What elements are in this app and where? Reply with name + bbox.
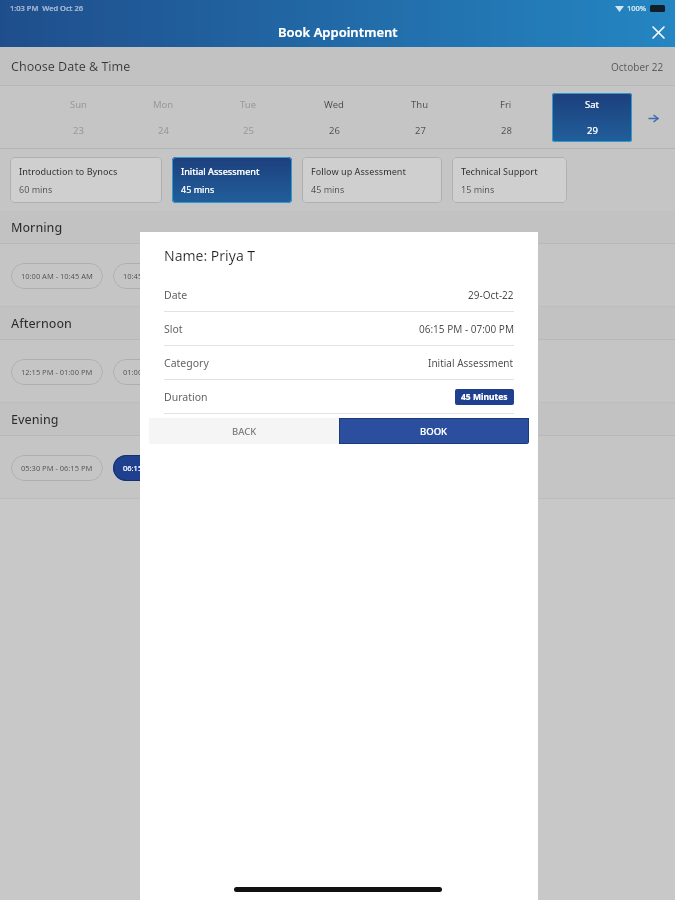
button[interactable]: Sun: [39, 93, 118, 142]
button[interactable]: Tue: [209, 93, 288, 142]
staticText: 26: [329, 124, 340, 137]
staticText: Fri: [500, 98, 512, 111]
staticText: BOOK: [420, 425, 448, 438]
staticText: Mon: [153, 98, 174, 111]
staticText: 10:00 AM - 10:45 AM: [21, 271, 93, 281]
staticText: Slot: [164, 322, 183, 336]
button[interactable]: Sat: [552, 93, 632, 142]
staticText: 45 mins: [181, 183, 215, 195]
staticText: 29: [587, 124, 598, 137]
button[interactable]: 06:15 PM - 07:00 PM: [113, 455, 205, 481]
staticText: Date: [164, 288, 188, 302]
staticText: Choose Date & Time: [11, 58, 131, 75]
button[interactable]: 05:30 PM - 06:15 PM: [11, 455, 103, 481]
staticText: Afternoon: [11, 315, 72, 332]
staticText: Initial Assessment: [181, 165, 260, 177]
staticText: 06:15 PM - 07:00 PM: [419, 322, 514, 336]
staticText: Wed: [324, 98, 344, 111]
staticText: 25: [243, 124, 254, 137]
staticText: Sat: [585, 98, 599, 111]
button[interactable]: Close: [641, 15, 675, 49]
button[interactable]: Follow up Assessment: [302, 157, 442, 203]
staticText: 05:30 PM - 06:15 PM: [21, 463, 93, 473]
staticText: Technical Support: [461, 165, 538, 177]
staticText: October 22: [611, 60, 664, 74]
staticText: 12:15 PM - 01:00 PM: [21, 367, 93, 377]
staticText: 1:03 PM Wed Oct 26: [10, 3, 83, 13]
button[interactable]: Thu: [380, 93, 460, 142]
staticText: 15 mins: [461, 183, 495, 195]
button[interactable]: Wed: [294, 93, 374, 142]
button[interactable]: Technical Support: [452, 157, 567, 203]
staticText: 01:00 PM - 01:45 PM: [123, 367, 195, 377]
button[interactable]: Fri: [466, 93, 546, 142]
staticText: Category: [164, 356, 209, 370]
button[interactable]: Introduction to Bynocs: [10, 157, 162, 203]
button[interactable]: BACK: [149, 418, 339, 444]
button[interactable]: 12:15 PM - 01:00 PM: [11, 359, 103, 385]
button[interactable]: 04:00 PM - 04:45 PM: [215, 359, 307, 385]
staticText: Evening: [11, 411, 59, 428]
staticText: Duration: [164, 390, 208, 404]
button[interactable]: BOOK: [339, 418, 529, 444]
staticText: 10:45 AM - 11:30 AM: [123, 271, 195, 281]
staticText: Introduction to Bynocs: [19, 165, 118, 177]
staticText: Sun: [70, 98, 87, 111]
staticText: Name: Priya T: [164, 246, 256, 265]
staticText: Thu: [411, 98, 429, 111]
staticText: Tue: [240, 98, 257, 111]
staticText: 06:15 PM - 07:00 PM: [123, 463, 195, 473]
button[interactable]: Initial Assessment: [172, 157, 292, 203]
button[interactable]: Next week: [643, 108, 663, 128]
staticText: 60 mins: [19, 183, 53, 195]
staticText: Initial Assessment: [428, 356, 514, 370]
button[interactable]: 10:45 AM - 11:30 AM: [113, 263, 205, 289]
staticText: 45 Minutes: [461, 391, 508, 403]
staticText: 29-Oct-22: [468, 288, 514, 302]
staticText: 27: [415, 124, 426, 137]
staticText: Morning: [11, 219, 63, 236]
staticText: 45 mins: [311, 183, 345, 195]
staticText: Follow up Assessment: [311, 165, 406, 177]
button[interactable]: 01:00 PM - 01:45 PM: [113, 359, 205, 385]
staticText: 100%: [627, 3, 647, 13]
staticText: 28: [501, 124, 512, 137]
button[interactable]: 10:00 AM - 10:45 AM: [11, 263, 103, 289]
staticText: 24: [158, 124, 169, 137]
staticText: BACK: [232, 425, 257, 438]
staticText: Book Appointment: [278, 23, 398, 41]
staticText: 23: [73, 124, 84, 137]
button[interactable]: 11:30 AM - 12:15 PM: [215, 263, 307, 289]
button[interactable]: Mon: [124, 93, 203, 142]
